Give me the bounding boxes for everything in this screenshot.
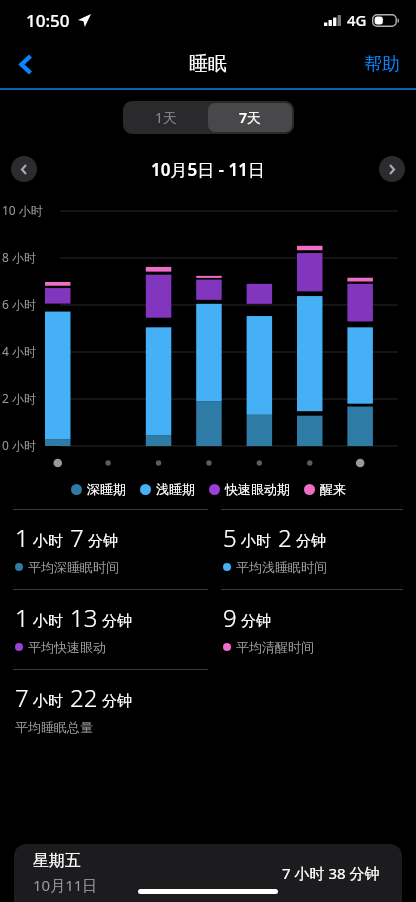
button[interactable]: 帮助 — [348, 43, 416, 86]
staticText: 9 — [223, 601, 237, 634]
button[interactable]: 9 — [208, 589, 403, 669]
staticText: 浅睡期 — [156, 481, 195, 497]
button[interactable]: Back — [4, 42, 48, 86]
button[interactable]: 深睡期 — [71, 481, 126, 497]
staticText: 分钟 — [102, 612, 132, 631]
staticText: 10月5日 - 11日 — [151, 158, 265, 181]
staticText: 平均睡眠总量 — [15, 719, 93, 735]
button[interactable]: 醒来 — [304, 481, 346, 497]
button[interactable]: 快速眼动期 — [209, 481, 290, 497]
button[interactable]: 7 — [13, 669, 208, 749]
button[interactable]: 浅睡期 — [140, 481, 195, 497]
staticText: 小时 — [241, 532, 271, 551]
staticText: 7 — [70, 521, 84, 554]
staticText: 分钟 — [296, 532, 326, 551]
staticText: 6 小时 — [2, 296, 36, 312]
staticText: 4G — [347, 10, 367, 30]
button[interactable]: 1天 — [125, 103, 208, 132]
staticText: 7天 — [239, 108, 262, 127]
button[interactable]: 1 — [13, 509, 208, 589]
staticText: 小时 — [33, 692, 63, 711]
staticText: 分钟 — [102, 692, 132, 711]
button[interactable]: Next — [379, 156, 405, 182]
button[interactable]: 7天 — [208, 103, 292, 132]
staticText: 1天 — [155, 108, 178, 127]
staticText: 睡眠 — [189, 52, 227, 76]
staticText: 小时 — [33, 612, 63, 631]
staticText: 4 小时 — [2, 343, 36, 359]
staticText: 快速眼动期 — [225, 481, 290, 497]
staticText: 分钟 — [88, 532, 118, 551]
staticText: 22 — [70, 681, 98, 714]
staticText: 深睡期 — [87, 481, 126, 497]
staticText: 分钟 — [241, 612, 271, 631]
staticText: 8 小时 — [2, 249, 36, 265]
staticText: 1 — [15, 601, 29, 634]
staticText: 1 — [15, 521, 29, 554]
staticText: 平均深睡眠时间 — [28, 559, 119, 575]
staticText: 星期五 — [33, 851, 81, 871]
staticText: 0 小时 — [2, 437, 36, 453]
staticText: 7 小时 38 分钟 — [282, 863, 380, 883]
staticText: 醒来 — [320, 481, 346, 497]
staticText: 10:50 — [26, 9, 70, 32]
button[interactable]: 星期五 — [14, 844, 402, 902]
button[interactable]: 5 — [208, 509, 403, 589]
staticText: 平均清醒时间 — [236, 639, 314, 655]
button[interactable]: Previous — [11, 156, 37, 182]
staticText: 10 小时 — [2, 202, 43, 218]
button[interactable]: 1 — [13, 589, 208, 669]
staticText: 平均快速眼动 — [28, 639, 106, 655]
staticText: 平均浅睡眠时间 — [236, 559, 327, 575]
staticText: 帮助 — [364, 53, 400, 76]
staticText: 小时 — [33, 532, 63, 551]
staticText: 10月11日 — [33, 875, 98, 895]
staticText: 13 — [70, 601, 98, 634]
staticText: 5 — [223, 521, 237, 554]
staticText: 2 — [278, 521, 292, 554]
staticText: 7 — [15, 681, 29, 714]
staticText: 2 小时 — [2, 390, 36, 406]
